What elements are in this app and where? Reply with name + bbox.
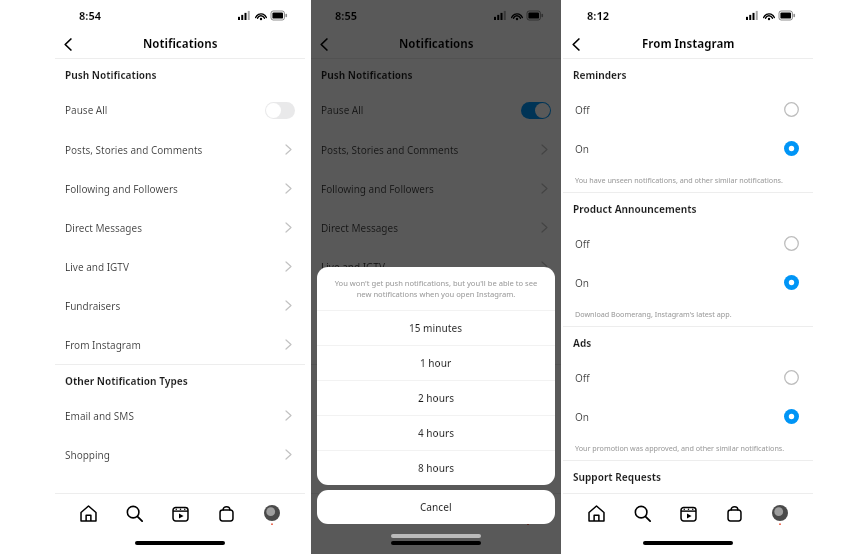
button[interactable]: Search: [121, 500, 147, 526]
button[interactable]: Posts, Stories and Comments: [55, 130, 305, 169]
button[interactable]: Back: [55, 31, 81, 57]
button[interactable]: From Instagram: [311, 325, 561, 364]
staticText: You have unseen notifications, and other…: [575, 175, 783, 185]
staticText: Live and IGTV: [65, 260, 129, 274]
button[interactable]: Pause All: [311, 90, 561, 130]
staticText: Product Announcements: [573, 202, 697, 216]
button[interactable]: Back: [311, 31, 337, 57]
button[interactable]: Cancel: [317, 490, 555, 524]
staticText: Off: [575, 371, 590, 385]
button[interactable]: Off: [563, 90, 813, 129]
button[interactable]: On: [563, 129, 813, 168]
button[interactable]: Pause All: [55, 90, 305, 130]
button[interactable]: Live and IGTV: [311, 247, 561, 286]
staticText: 8:54: [79, 8, 101, 23]
staticText: Cancel: [420, 500, 452, 514]
staticText: Posts, Stories and Comments: [65, 143, 203, 157]
staticText: 15 minutes: [409, 321, 463, 335]
staticText: Push Notifications: [321, 68, 413, 82]
staticText: On: [575, 410, 589, 424]
staticText: Your promotion was approved, and other s…: [575, 443, 785, 453]
staticText: Pause All: [65, 103, 108, 117]
staticText: 1 hour: [420, 356, 452, 370]
staticText: 8 hours: [418, 461, 455, 475]
staticText: Shopping: [321, 448, 366, 462]
staticText: Email and SMS: [321, 409, 390, 423]
button[interactable]: Shop: [469, 500, 495, 526]
button[interactable]: On: [563, 263, 813, 302]
button[interactable]: 2 hours: [317, 381, 555, 415]
staticText: Direct Messages: [321, 221, 398, 235]
staticText: Support Requests: [573, 470, 662, 484]
staticText: Fundraisers: [65, 299, 121, 313]
button[interactable]: Shop: [721, 500, 747, 526]
staticText: Pause All: [321, 103, 364, 117]
staticText: Live and IGTV: [321, 260, 385, 274]
staticText: Shopping: [65, 448, 110, 462]
staticText: Other Notification Types: [65, 374, 188, 388]
staticText: From Instagram: [65, 338, 141, 352]
staticText: Following and Followers: [321, 182, 434, 196]
button[interactable]: Email and SMS: [311, 396, 561, 435]
button[interactable]: 1 hour: [317, 346, 555, 380]
staticText: Off: [575, 103, 590, 117]
button[interactable]: Fundraisers: [311, 286, 561, 325]
button[interactable]: Profile: [259, 500, 285, 526]
staticText: Notifications: [143, 36, 218, 52]
button[interactable]: Search: [377, 500, 403, 526]
button[interactable]: Email and SMS: [55, 396, 305, 435]
staticText: From Instagram: [321, 338, 397, 352]
button[interactable]: Search: [629, 500, 655, 526]
button[interactable]: Home: [583, 500, 609, 526]
button[interactable]: 4 hours: [317, 416, 555, 450]
staticText: On: [575, 142, 589, 156]
button[interactable]: From Instagram: [55, 325, 305, 364]
staticText: You won't get push notifications, but yo…: [331, 278, 541, 299]
staticText: 4 hours: [418, 426, 455, 440]
button[interactable]: Live and IGTV: [55, 247, 305, 286]
button[interactable]: Direct Messages: [55, 208, 305, 247]
button[interactable]: On: [563, 397, 813, 436]
button[interactable]: Home: [331, 500, 357, 526]
button[interactable]: Profile: [767, 500, 793, 526]
button[interactable]: 8 hours: [317, 451, 555, 485]
staticText: Push Notifications: [65, 68, 157, 82]
button[interactable]: Reels: [675, 500, 701, 526]
button[interactable]: Direct Messages: [311, 208, 561, 247]
staticText: Following and Followers: [65, 182, 178, 196]
staticText: Reminders: [573, 68, 627, 82]
button[interactable]: Shop: [213, 500, 239, 526]
staticText: Notifications: [399, 36, 474, 52]
button[interactable]: Home: [75, 500, 101, 526]
staticText: Email and SMS: [65, 409, 134, 423]
staticText: Other Notification Types: [321, 374, 444, 388]
button[interactable]: Off: [563, 358, 813, 397]
button[interactable]: Shopping: [55, 435, 305, 474]
staticText: 8:55: [335, 8, 357, 23]
button[interactable]: Posts, Stories and Comments: [311, 130, 561, 169]
staticText: From Instagram: [642, 36, 735, 52]
button[interactable]: Fundraisers: [55, 286, 305, 325]
staticText: 2 hours: [418, 391, 455, 405]
staticText: On: [575, 276, 589, 290]
staticText: Ads: [573, 336, 592, 350]
button[interactable]: Back: [563, 31, 589, 57]
staticText: Download Boomerang, Instagram's latest a…: [575, 309, 732, 319]
button[interactable]: 15 minutes: [317, 311, 555, 345]
staticText: Direct Messages: [65, 221, 142, 235]
button[interactable]: Reels: [167, 500, 193, 526]
button[interactable]: Following and Followers: [55, 169, 305, 208]
staticText: Posts, Stories and Comments: [321, 143, 459, 157]
button[interactable]: Shopping: [311, 435, 561, 474]
button[interactable]: Off: [563, 224, 813, 263]
staticText: Fundraisers: [321, 299, 377, 313]
staticText: 8:12: [587, 8, 609, 23]
button[interactable]: Reels: [423, 500, 449, 526]
button[interactable]: Following and Followers: [311, 169, 561, 208]
button[interactable]: Profile: [515, 500, 541, 526]
staticText: Off: [575, 237, 590, 251]
